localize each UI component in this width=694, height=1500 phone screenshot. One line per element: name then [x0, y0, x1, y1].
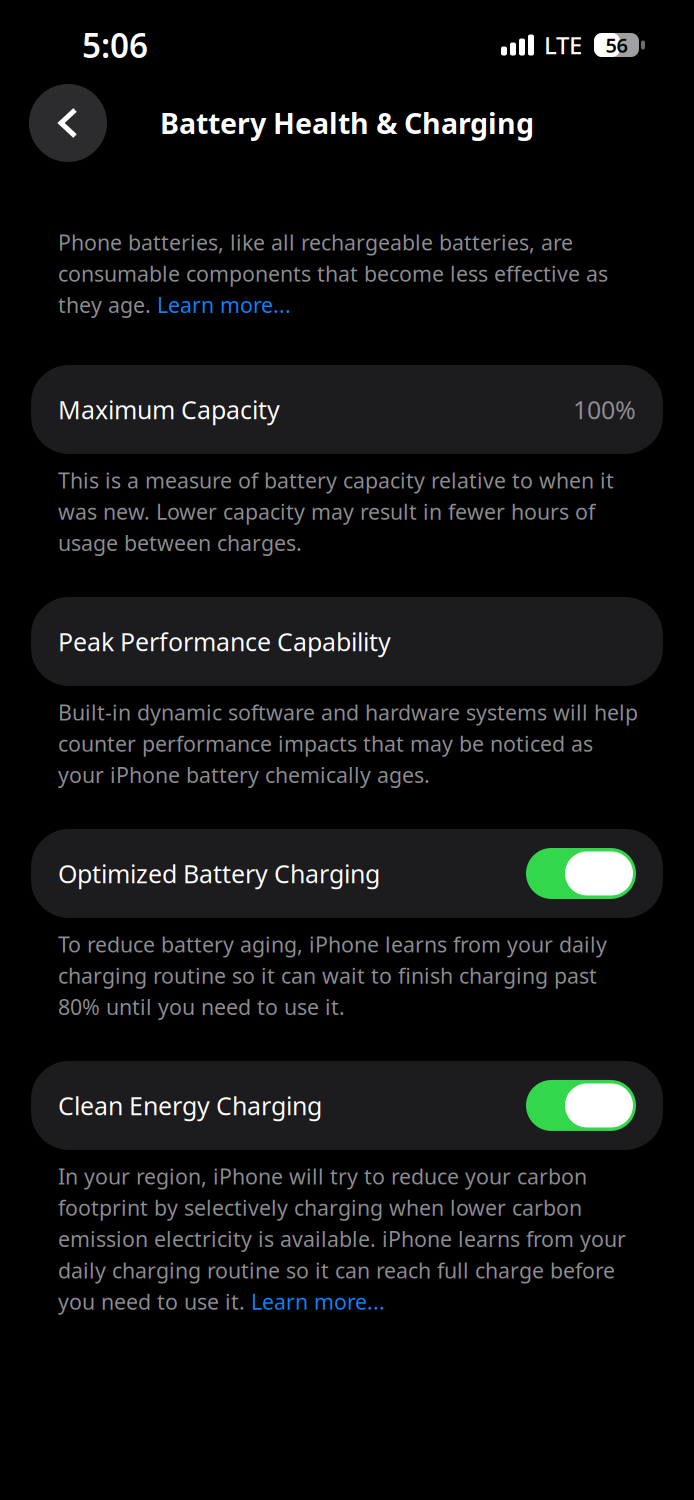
- staticText: 100%: [573, 392, 636, 426]
- staticText: This is a measure of battery capacity re…: [58, 466, 614, 557]
- staticText: 5:06: [82, 22, 148, 68]
- staticText: Maximum Capacity: [58, 392, 280, 426]
- staticText: Optimized Battery Charging: [58, 856, 380, 890]
- button[interactable]: Back: [29, 84, 107, 162]
- staticText: 56: [605, 32, 627, 58]
- button[interactable]: Clean Energy Charging: [31, 1061, 663, 1150]
- staticText: In your region, iPhone will try to reduc…: [58, 1162, 626, 1316]
- button[interactable]: Maximum Capacity: [31, 365, 663, 454]
- staticText: Built-in dynamic software and hardware s…: [58, 698, 638, 789]
- button[interactable]: Peak Performance Capability: [31, 597, 663, 686]
- staticText: Battery Health & Charging: [160, 103, 534, 142]
- staticText: To reduce battery aging, iPhone learns f…: [58, 930, 607, 1021]
- button[interactable]: Optimized Battery Charging: [31, 829, 663, 918]
- staticText: Phone batteries, like all rechargeable b…: [58, 228, 608, 319]
- staticText: Peak Performance Capability: [58, 624, 391, 658]
- staticText: LTE: [544, 29, 582, 61]
- staticText: Clean Energy Charging: [58, 1088, 322, 1122]
